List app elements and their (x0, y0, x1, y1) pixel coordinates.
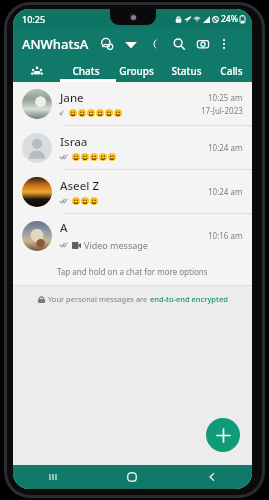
staticText: 10:16 am (208, 230, 243, 241)
button[interactable]: Search (167, 32, 191, 56)
button[interactable]: Israa (13, 126, 252, 169)
staticText: Your personal messages are (48, 294, 150, 304)
staticText: 10:24 am (208, 186, 243, 197)
button[interactable]: Aseel Z (13, 170, 252, 213)
button[interactable]: Night mode (143, 32, 167, 56)
button[interactable]: Camera (191, 32, 215, 56)
staticText: 17-Jul-2023 (201, 105, 243, 116)
button[interactable]: A (13, 214, 252, 257)
button[interactable]: Calls (211, 60, 252, 82)
staticText: Calls (220, 64, 243, 78)
button[interactable]: Home (92, 465, 172, 489)
button[interactable]: Groups (111, 60, 161, 82)
staticText: 10:25 (22, 13, 46, 25)
staticText: Aseel Z (60, 178, 100, 194)
staticText: Tap and hold on a chat for more options (57, 266, 208, 277)
button[interactable]: New chat (206, 418, 240, 452)
staticText: Status (171, 64, 202, 78)
staticText: Israa (60, 134, 88, 150)
button[interactable]: Status (161, 60, 211, 82)
staticText: 24% (221, 13, 238, 25)
staticText: Jane (60, 90, 84, 106)
staticText: 10:24 am (208, 142, 243, 153)
staticText: Chats (72, 64, 100, 78)
staticText: Groups (119, 64, 154, 78)
button[interactable]: Status (119, 32, 143, 56)
button[interactable]: Chats (60, 60, 111, 82)
button[interactable]: Contacts (95, 32, 119, 56)
staticText: ANWhatsApp (22, 35, 92, 53)
staticText: A (60, 220, 68, 236)
button[interactable]: Recents (13, 465, 92, 489)
button[interactable]: More options (215, 35, 233, 53)
button[interactable]: Jane (13, 82, 252, 125)
button[interactable]: Communities (13, 60, 60, 82)
staticText: Video message (84, 239, 148, 251)
staticText: 10:25 am (208, 92, 243, 103)
button[interactable]: Back (172, 465, 252, 489)
staticText: end-to-end encrypted (150, 294, 228, 304)
